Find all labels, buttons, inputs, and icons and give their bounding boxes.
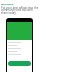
button[interactable]: Continue xyxy=(8,61,31,66)
staticText: WHATSAPP xyxy=(1,3,14,6)
staticText: Put your best efforts into the community… xyxy=(1,6,39,15)
